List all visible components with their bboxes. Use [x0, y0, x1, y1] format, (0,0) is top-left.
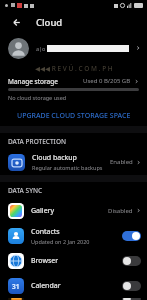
staticText: Enabled [110, 158, 133, 166]
button[interactable]: a|o [0, 33, 147, 63]
button[interactable]: Notepad [0, 298, 147, 300]
button[interactable]: Gallery [0, 198, 147, 223]
staticText: No cloud storage used [8, 94, 67, 101]
staticText: Cloud backup [32, 153, 77, 163]
staticText: Used 0 B/205 GB [83, 77, 131, 85]
staticText: Disabled [108, 207, 133, 215]
button[interactable]: Manage storage [0, 74, 147, 88]
staticText: Regular automatic backups [32, 164, 103, 171]
staticText: a|o [36, 45, 46, 52]
button[interactable]: Back [10, 14, 26, 30]
button[interactable]: Off [122, 256, 141, 266]
staticText: DATA PROTECTION [8, 137, 67, 146]
button[interactable]: UPGRADE CLOUD STORAGE SPACE [0, 106, 147, 126]
staticText: Gallery [31, 206, 55, 216]
button[interactable]: Off [122, 298, 141, 300]
staticText: UPGRADE CLOUD STORAGE SPACE [17, 111, 131, 121]
staticText: 31 [12, 282, 20, 291]
staticText: Cloud [36, 16, 63, 29]
staticText: ◀◀◀ R E V Ú . C O M . P H [35, 64, 113, 73]
staticText: Browser [31, 256, 59, 266]
button[interactable]: 31 [0, 273, 147, 298]
staticText: Updated on 2 Jan 2020 [31, 238, 90, 245]
staticText: DATA SYNC [8, 186, 43, 195]
staticText: Contacts [31, 227, 60, 237]
button[interactable]: Off [122, 281, 141, 291]
staticText: Calendar [31, 281, 61, 291]
button[interactable]: Contacts [0, 223, 147, 248]
button[interactable]: Browser [0, 248, 147, 273]
button[interactable]: Cloud backup [0, 149, 147, 175]
staticText: Manage storage [8, 77, 58, 86]
button[interactable]: On [122, 231, 141, 241]
